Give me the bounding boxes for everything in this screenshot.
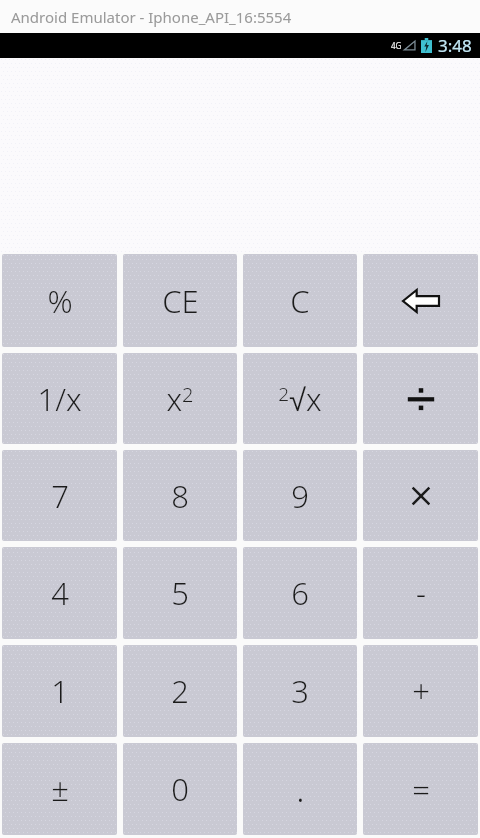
staticText: 4G [391,40,402,51]
button[interactable]: 8 [123,450,237,541]
staticText: - [416,572,426,614]
staticText: 5 [171,572,189,614]
staticText: 1 [51,670,69,712]
button[interactable]: Square root [243,353,357,444]
button[interactable]: Backspace [363,254,478,347]
staticText: 7 [51,475,69,517]
staticText: 1/x [37,378,82,420]
button[interactable]: 1/x [2,353,117,444]
staticText: + [412,670,430,712]
button[interactable]: CE [123,254,237,347]
staticText: 6 [291,572,309,614]
button[interactable]: 4 [2,547,117,639]
staticText: 0 [171,768,189,810]
staticText: 3 [291,670,309,712]
staticText: CE [162,280,199,322]
button[interactable]: 9 [243,450,357,541]
button[interactable]: Divide [363,353,478,444]
button[interactable]: 7 [2,450,117,541]
button[interactable]: + [363,645,478,737]
button[interactable]: 1 [2,645,117,737]
staticText: C [290,280,310,322]
button[interactable]: 3 [243,645,357,737]
staticText: 2√x [278,378,322,420]
button[interactable]: . [243,743,357,835]
staticText: . [296,766,305,812]
staticText: 2 [171,670,189,712]
staticText: 8 [171,475,189,517]
staticText: 3:48 [438,34,472,57]
button[interactable]: 0 [123,743,237,835]
button[interactable]: - [363,547,478,639]
button[interactable]: 6 [243,547,357,639]
button[interactable]: ± [2,743,117,835]
staticText: Android Emulator - Iphone_API_16:5554 [11,7,292,27]
button[interactable]: x2 [123,353,237,444]
staticText: % [47,280,73,322]
button[interactable]: Multiply [363,450,478,541]
staticText: x2 [166,378,194,420]
button[interactable]: 5 [123,547,237,639]
staticText: 9 [291,475,309,517]
button[interactable]: % [2,254,117,347]
staticText: = [412,768,430,810]
button[interactable]: C [243,254,357,347]
staticText: 4 [51,572,69,614]
button[interactable]: 2 [123,645,237,737]
staticText: ± [51,768,69,810]
button[interactable]: = [363,743,478,835]
